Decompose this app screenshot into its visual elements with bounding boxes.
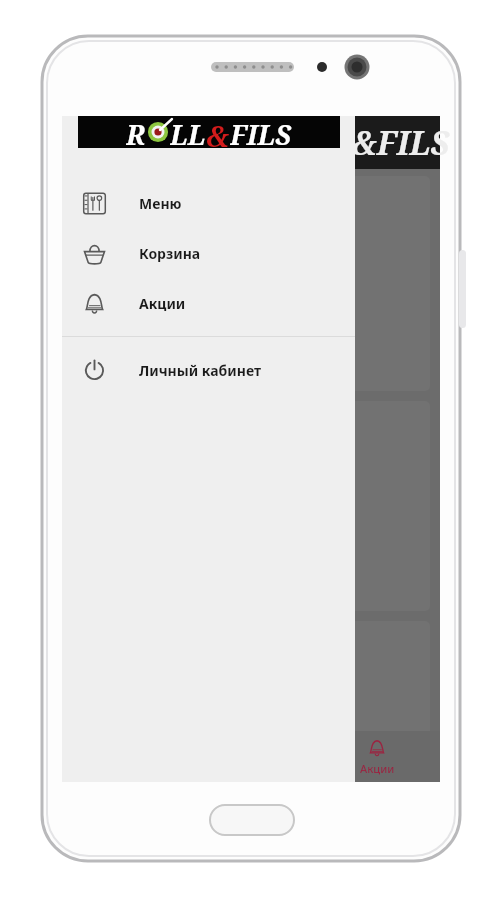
- button[interactable]: Корзина: [62, 228, 355, 278]
- button[interactable]: Акции: [314, 731, 440, 782]
- staticText: Меню: [139, 194, 182, 213]
- button[interactable]: Акции: [62, 278, 355, 328]
- button[interactable]: Комбо набор №3: [72, 621, 430, 751]
- staticText: FILS: [230, 116, 292, 148]
- staticText: Акции: [360, 761, 395, 776]
- staticText: LL: [170, 116, 206, 148]
- staticText: Комбо набор №1: [86, 186, 233, 248]
- staticText: Акции: [139, 294, 186, 313]
- button[interactable]: Личный кабинет: [62, 345, 355, 395]
- staticText: &: [206, 116, 230, 148]
- button[interactable]: Комбо набор №2: [72, 401, 430, 611]
- button[interactable]: Комбо набор №1: [72, 176, 430, 391]
- staticText: Корзина: [139, 244, 201, 263]
- staticText: Личный кабинет: [139, 361, 261, 380]
- button[interactable]: Меню: [62, 178, 355, 228]
- staticText: ROLL&FILS: [262, 121, 450, 165]
- staticText: R: [126, 116, 146, 148]
- staticText: Состав набора : Роллы, пицца, напитки, ч…: [86, 254, 193, 326]
